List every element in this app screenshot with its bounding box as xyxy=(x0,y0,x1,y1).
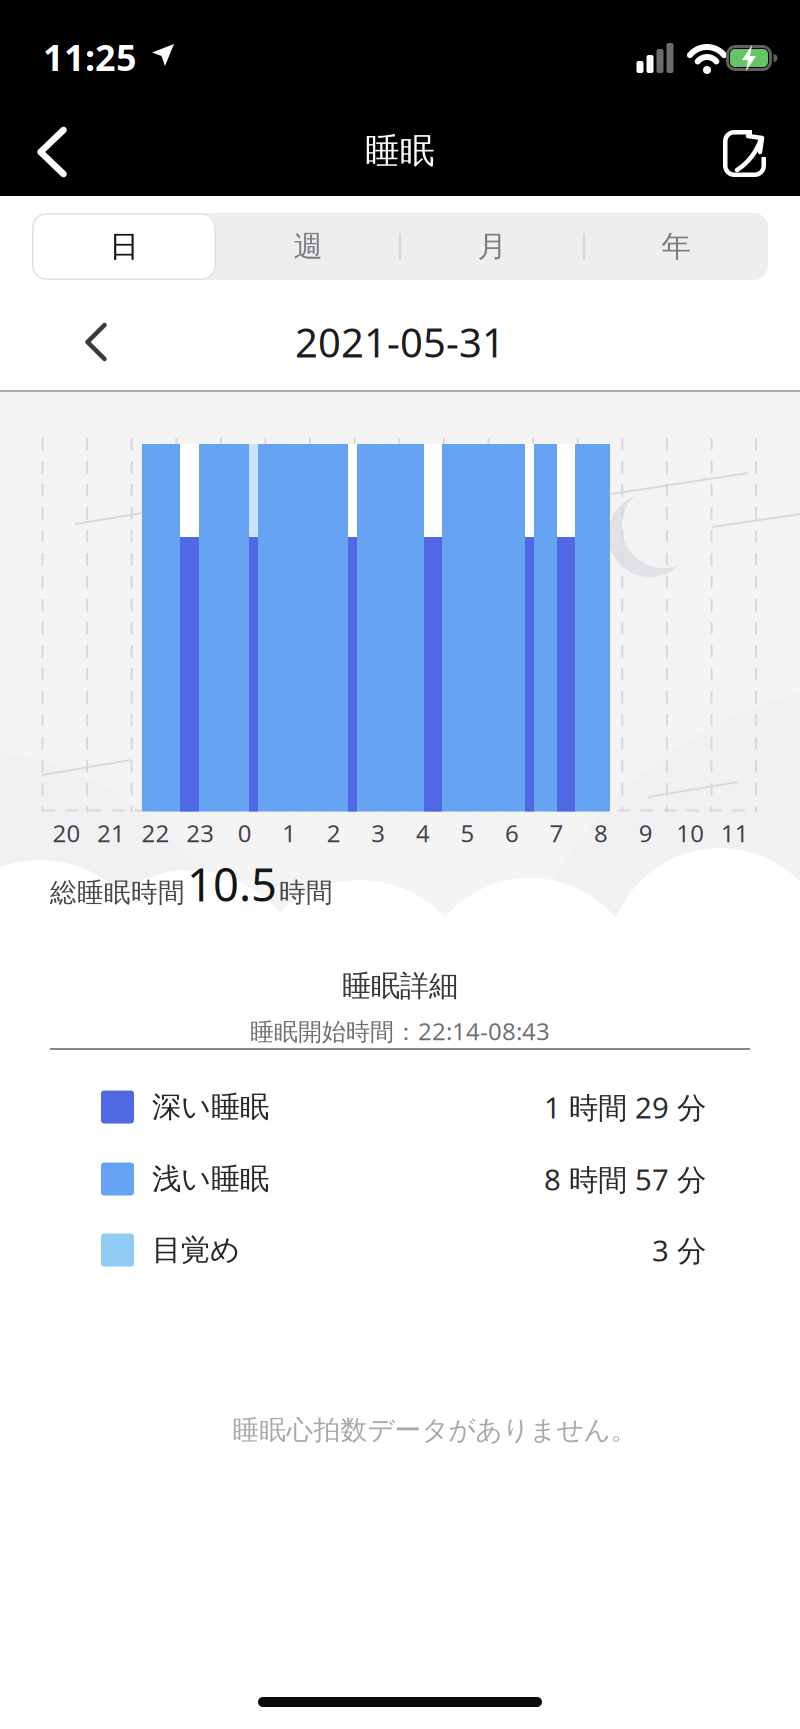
staticText: 10 xyxy=(676,817,704,849)
staticText: 1 時間 29 分 xyxy=(544,1087,706,1126)
button[interactable]: Share xyxy=(714,123,774,183)
staticText: 浅い睡眠 xyxy=(152,1161,269,1197)
staticText: 週 xyxy=(293,228,322,264)
staticText: 10.5 xyxy=(187,854,277,914)
staticText: 総睡眠時間 xyxy=(50,876,185,909)
staticText: 8 時間 57 分 xyxy=(544,1159,706,1198)
staticText: 1 xyxy=(282,817,296,849)
staticText: 23 xyxy=(186,817,214,849)
staticText: 3 xyxy=(371,817,385,849)
staticText: 11:25 xyxy=(43,33,137,81)
button[interactable]: Back xyxy=(22,122,82,182)
staticText: 睡眠心拍数データがありません。 xyxy=(232,1414,637,1446)
staticText: 0 xyxy=(238,817,252,849)
staticText: 睡眠 xyxy=(365,130,435,172)
staticText: 4 xyxy=(416,817,430,849)
staticText: 8 xyxy=(594,817,608,849)
staticText: 時間 xyxy=(279,876,333,909)
staticText: 20 xyxy=(52,817,80,849)
staticText: 年 xyxy=(661,228,690,264)
staticText: 21 xyxy=(97,817,125,849)
button[interactable]: 日 xyxy=(32,213,216,280)
staticText: 2 xyxy=(327,817,341,849)
button[interactable]: Previous day xyxy=(66,312,126,372)
staticText: 7 xyxy=(549,817,563,849)
staticText: 9 xyxy=(639,817,653,849)
button[interactable]: 年 xyxy=(596,216,756,276)
staticText: 日 xyxy=(109,228,138,264)
staticText: 目覚め xyxy=(152,1232,240,1268)
staticText: 6 xyxy=(505,817,519,849)
staticText: 3 分 xyxy=(652,1230,706,1269)
staticText: 深い睡眠 xyxy=(152,1089,269,1125)
staticText: 睡眠開始時間：22:14-08:43 xyxy=(250,1015,550,1047)
staticText: 2021-05-31 xyxy=(295,315,505,368)
staticText: 11 xyxy=(721,817,749,849)
staticText: 月 xyxy=(477,228,506,264)
staticText: 22 xyxy=(142,817,170,849)
button[interactable]: 週 xyxy=(228,216,388,276)
button[interactable]: 月 xyxy=(412,216,572,276)
staticText: 5 xyxy=(460,817,474,849)
staticText: 睡眠詳細 xyxy=(342,968,458,1004)
